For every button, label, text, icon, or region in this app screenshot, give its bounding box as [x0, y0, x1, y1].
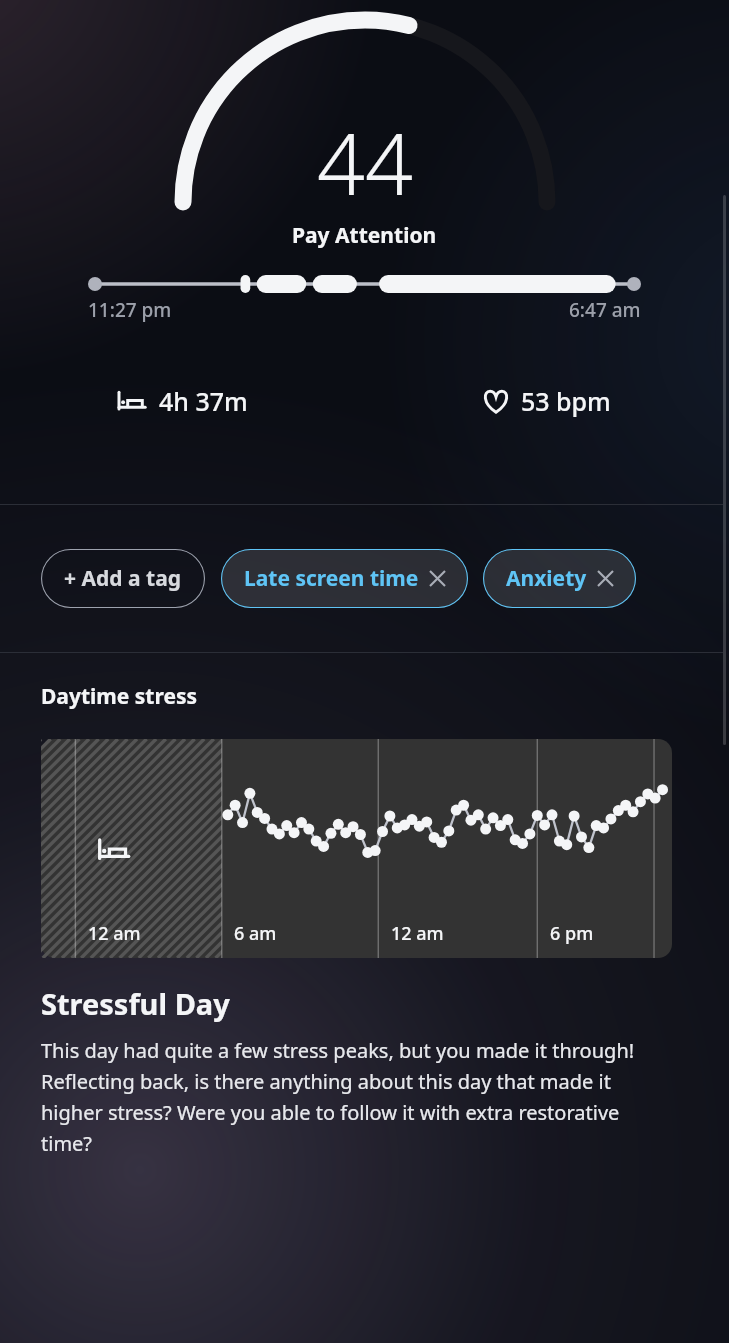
- other: Sleep duration: [117, 389, 148, 413]
- other: Remove tag: [598, 571, 613, 586]
- staticText: 6 am: [234, 921, 277, 946]
- button[interactable]: Late screen time: [221, 549, 468, 608]
- staticText: Anxiety: [506, 564, 587, 593]
- button[interactable]: Resting heart rate: [364, 384, 729, 418]
- staticText: 6 pm: [550, 921, 594, 946]
- button[interactable]: + Add a tag: [41, 549, 205, 608]
- staticText: Pay Attention: [292, 221, 437, 250]
- staticText: 11:27 pm: [88, 297, 172, 323]
- staticText: 44: [317, 105, 413, 219]
- button[interactable]: Anxiety: [483, 549, 636, 608]
- staticText: 53 bpm: [521, 384, 611, 418]
- other: Resting heart rate: [482, 389, 510, 414]
- button[interactable]: Sleep duration: [0, 384, 364, 418]
- staticText: Daytime stress: [41, 682, 198, 711]
- staticText: 12 am: [391, 921, 444, 946]
- staticText: Late screen time: [244, 564, 419, 593]
- staticText: 4h 37m: [159, 384, 248, 418]
- staticText: 6:47 am: [569, 297, 641, 323]
- staticText: This day had quite a few stress peaks, b…: [41, 1037, 637, 1157]
- staticText: + Add a tag: [64, 564, 182, 593]
- staticText: 12 am: [88, 921, 141, 946]
- button[interactable]: Daytime stress chart: [41, 739, 672, 958]
- staticText: Stressful Day: [41, 984, 230, 1023]
- other: Remove tag: [430, 571, 445, 586]
